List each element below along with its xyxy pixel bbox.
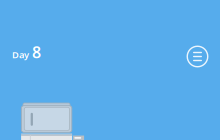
button[interactable]: Menu [182, 41, 212, 71]
staticText: 8 [32, 41, 41, 63]
staticText: Day [12, 48, 29, 61]
